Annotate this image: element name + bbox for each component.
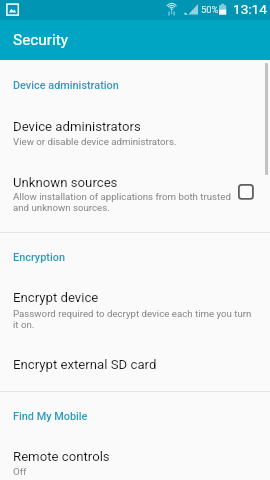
staticText: Security xyxy=(13,31,69,49)
button[interactable] xyxy=(0,275,270,335)
staticText: 50% xyxy=(201,4,219,15)
button[interactable] xyxy=(0,435,270,480)
button[interactable]: Security xyxy=(0,20,270,60)
staticText: Device administrators xyxy=(13,119,253,134)
staticText: Unknown sources xyxy=(13,175,253,190)
staticText: Encrypt device xyxy=(13,290,253,305)
button[interactable] xyxy=(0,343,270,378)
staticText: Encrypt external SD card xyxy=(13,357,253,372)
staticText: Encryption xyxy=(13,251,253,264)
staticText: Find My Mobile xyxy=(13,410,253,423)
staticText: Remote controls xyxy=(13,449,253,464)
staticText: Allow installation of applications from … xyxy=(13,191,263,213)
staticText: 13:14 xyxy=(233,1,267,17)
button[interactable] xyxy=(0,100,270,155)
button[interactable] xyxy=(0,161,270,219)
staticText: View or disable device administrators. xyxy=(13,136,253,147)
button[interactable]: Unknown sources checkbox xyxy=(238,184,254,200)
staticText: Off xyxy=(13,466,253,477)
staticText: Password required to decrypt device each… xyxy=(13,308,268,330)
staticText: Device administration xyxy=(13,79,253,92)
